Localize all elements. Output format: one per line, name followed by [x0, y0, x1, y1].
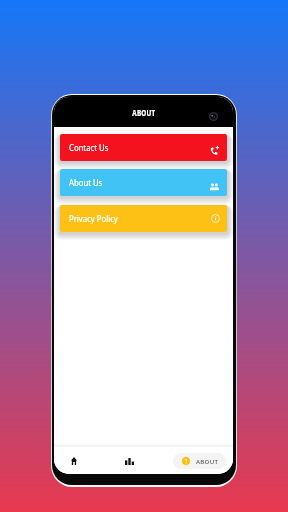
- staticText: ABOUT: [196, 457, 219, 465]
- button[interactable]: Contact Us: [60, 134, 227, 161]
- button[interactable]: Privacy Policy: [60, 205, 227, 232]
- staticText: Contact Us: [69, 142, 109, 154]
- button[interactable]: Statistics: [119, 447, 140, 474]
- staticText: About Us: [69, 177, 103, 189]
- button[interactable]: Home: [64, 447, 85, 474]
- staticText: ABOUT: [132, 107, 156, 118]
- button[interactable]: ABOUT: [173, 453, 226, 469]
- staticText: Privacy Policy: [69, 213, 118, 225]
- button[interactable]: About Us: [60, 169, 227, 196]
